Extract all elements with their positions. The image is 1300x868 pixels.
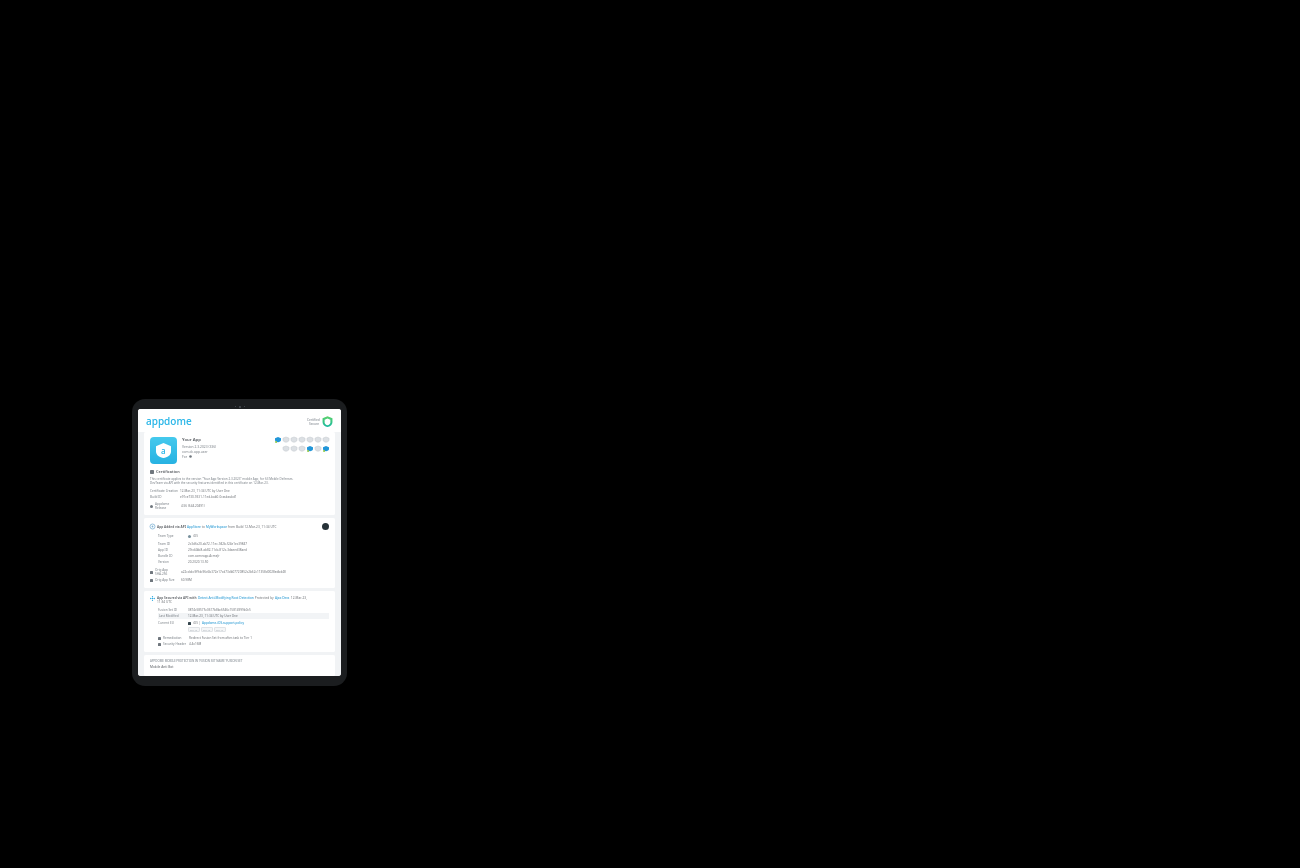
staticText: Team Type: [158, 534, 188, 538]
staticText: 12-Mar-23,: [290, 596, 308, 600]
staticText: iOS 14: [216, 628, 224, 631]
staticText: App Added via API: [157, 525, 187, 529]
button[interactable]: AppStore: [187, 525, 201, 529]
staticText: Team ID: [158, 542, 188, 546]
staticText: 29cd4bb8-ab82-11cb-812c-3daeed38aed: [188, 548, 247, 552]
staticText: Certified: [307, 418, 320, 422]
button[interactable]: iOS 15: [201, 627, 213, 632]
staticText: Orig App SHA-256: [155, 568, 181, 576]
button[interactable]: Protection: [323, 437, 329, 443]
staticText: Orig App Size: [155, 578, 181, 582]
staticText: from Build 12-Mar-23, 11:34 UTC: [227, 525, 277, 529]
button[interactable]: Protection: [283, 446, 289, 452]
button[interactable]: iOS 16: [188, 627, 200, 632]
button[interactable]: appdome: [146, 414, 192, 428]
button[interactable]: iOS 14: [214, 627, 226, 632]
button[interactable]: Active protection: [275, 437, 281, 443]
staticText: 20.2020.13.50: [188, 560, 209, 564]
staticText: APPDOME MOBILE PROTECTION IN 'FUSION SET…: [150, 659, 243, 663]
button[interactable]: Protection: [315, 437, 321, 443]
staticText: Certification: [156, 469, 180, 474]
staticText: Current EU: [158, 621, 188, 625]
staticText: App ID: [158, 548, 188, 552]
button[interactable]: Protection: [307, 437, 313, 443]
button[interactable]: Protection: [299, 446, 305, 452]
staticText: iOS 16: [190, 628, 198, 631]
staticText: Security Header: [163, 642, 189, 646]
button[interactable]: Protection: [283, 437, 289, 443]
staticText: a22cddcc9f9dc96c6b372e17cd73db07720852c2…: [181, 570, 286, 574]
staticText: Remediation: [163, 636, 189, 640]
button[interactable]: Protection: [299, 437, 305, 443]
button[interactable]: User avatar: [322, 523, 329, 530]
button[interactable]: Active protection: [323, 446, 329, 452]
staticText: 60.98M: [181, 578, 192, 582]
staticText: to: [201, 525, 206, 529]
staticText: 0874c58575c0617b8bc6546c15814999b0c5: [188, 608, 251, 612]
button[interactable]: Protection: [315, 446, 321, 452]
staticText: com.dc.app.user: [182, 449, 208, 453]
staticText: App Secured via API with: [157, 596, 198, 600]
staticText: iOS 15: [203, 628, 211, 631]
button[interactable]: Certified: [307, 416, 333, 427]
button[interactable]: Active protection: [307, 446, 313, 452]
staticText: iOS: [193, 534, 198, 538]
button[interactable]: App icon: [150, 437, 177, 464]
staticText: Mobile Anti Bot: [150, 665, 174, 669]
staticText: Version 2.3.2023 (336): [182, 444, 217, 448]
staticText: Redirect Fusion Set from after-task to T…: [189, 636, 252, 640]
staticText: Protected by: [254, 596, 275, 600]
button[interactable]: MyWorkspace: [206, 525, 227, 529]
staticText: e91ce730-9331-11ed-bab0-0casbasbd1: [180, 495, 237, 499]
staticText: a: [161, 445, 166, 456]
button[interactable]: Appdome-iOS-support-policy: [202, 621, 244, 625]
button[interactable]: Protection: [291, 446, 297, 452]
staticText: Fusion Set ID: [158, 608, 188, 612]
staticText: iOS |: [193, 621, 201, 625]
staticText: Appdome Release: [155, 502, 181, 510]
other: Certified Secure: [322, 416, 333, 427]
staticText: 12-Mar-23, 11:34 UTC by User One: [180, 489, 230, 493]
staticText: Your App: [182, 437, 201, 443]
staticText: 11:34 UTC: [157, 600, 173, 604]
staticText: DevTeam via API with the security featur…: [150, 481, 269, 485]
staticText: com.acmeapp.AcmeJr: [188, 554, 220, 558]
staticText: This certificate applies to the version …: [150, 477, 294, 481]
staticText: 4.56 (644.20491): [181, 504, 205, 508]
staticText: 4.4x16M: [189, 642, 202, 646]
staticText: For: [182, 454, 189, 458]
staticText: Version: [158, 560, 188, 564]
button[interactable]: Detect Anti-Modifying Root Detection: [198, 596, 254, 600]
button[interactable]: Ajax Devs: [275, 596, 290, 600]
staticText: Last Modified: [159, 614, 188, 618]
staticText: Certificate Creation: [150, 489, 180, 493]
staticText: 12-Mar-23, 11:34 UTC by User One: [188, 614, 238, 618]
button[interactable]: Protection: [291, 437, 297, 443]
staticText: Secure: [309, 422, 320, 426]
staticText: Build ID: [150, 495, 180, 499]
staticText: Bundle ID: [158, 554, 188, 558]
staticText: 2c3d6c20-ab72-11ec-942b-f24e1ec39847: [188, 542, 248, 546]
